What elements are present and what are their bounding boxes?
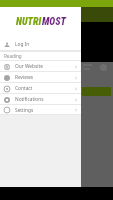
button[interactable]: Log In: [0, 38, 81, 51]
staticText: Contact: [15, 85, 33, 92]
button[interactable]: Contact: [0, 83, 81, 94]
staticText: Notifications: [15, 96, 44, 103]
staticText: Our Website: [15, 63, 43, 70]
staticText: Reviews: [15, 74, 33, 81]
button[interactable]: Profile photo: [100, 64, 107, 71]
staticText: Reading: [4, 53, 22, 59]
staticText: Settings: [15, 107, 34, 114]
staticText: Log In: [15, 41, 30, 48]
button[interactable]: Our Website: [0, 61, 81, 72]
button[interactable]: Notifications: [0, 94, 81, 105]
button[interactable]: Settings: [0, 105, 81, 115]
button[interactable]: Reviews: [0, 72, 81, 83]
staticText: NUTRI: [16, 16, 42, 28]
staticText: MOST: [42, 16, 66, 28]
